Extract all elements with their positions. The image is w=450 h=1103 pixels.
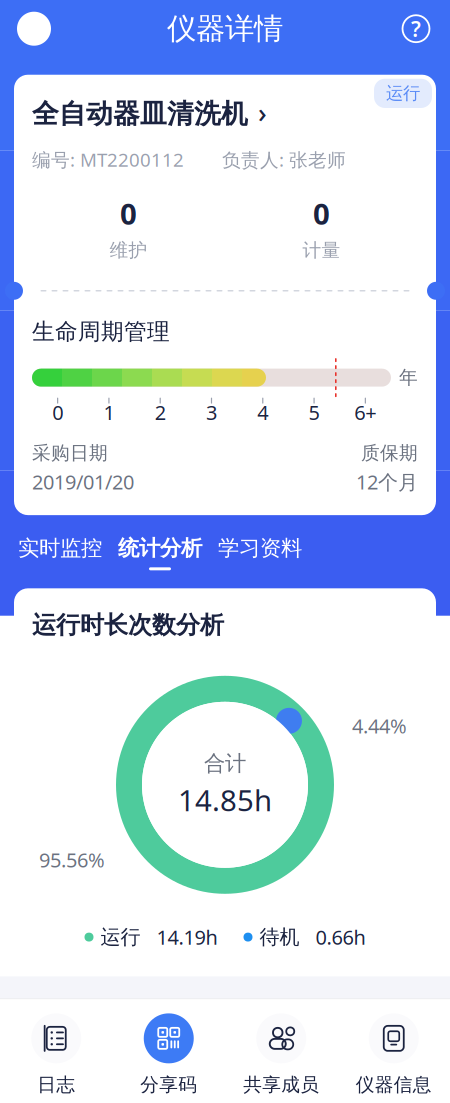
staticText: › [258,95,267,130]
staticText: 学习资料 [218,535,302,561]
staticText: 运行 [100,925,140,949]
staticText: 2 [155,399,166,426]
staticText: ? [411,14,421,43]
staticText: 年 [399,366,418,389]
button[interactable]: Back [12,7,56,51]
staticText: 实时监控 [18,535,102,561]
button[interactable]: 全自动器皿清洗机 [32,95,418,133]
staticText: 14.85h [178,780,272,819]
staticText: 计量 [302,239,340,262]
button[interactable]: 实时监控 [10,531,110,574]
button[interactable]: 学习资料 [210,531,310,574]
staticText: 共享成员 [243,1073,319,1096]
button[interactable]: 共享成员 [225,1013,337,1096]
staticText: 待机 [259,925,299,949]
staticText: 全自动器皿清洗机 [32,97,248,130]
staticText: 统计分析 [118,535,202,561]
staticText: 负责人: 张老师 [222,147,346,172]
button[interactable]: 日志 [0,1013,112,1096]
staticText: 运行时长次数分析 [32,610,224,640]
button[interactable]: 仪器信息 [337,1013,450,1096]
staticText: 5 [309,399,320,426]
staticText: 0 [52,399,63,426]
staticText: 0 [120,194,137,233]
staticText: 3 [206,399,217,426]
staticText: 95.56% [39,846,105,873]
button[interactable]: 分享码 [112,1013,225,1096]
staticText: 合计 [204,750,246,776]
staticText: 仪器详情 [167,11,283,47]
staticText: 维护 [109,239,147,262]
staticText: 生命周期管理 [32,318,170,346]
staticText: 12个月 [356,469,418,495]
staticText: 采购日期 [32,442,108,464]
staticText: 2019/01/20 [32,469,134,495]
staticText: 质保期 [361,442,418,464]
staticText: 4.44% [352,712,407,739]
staticText: 14.19h [156,924,217,950]
staticText: 0 [313,194,330,233]
staticText: 日志 [37,1073,75,1096]
staticText: 6+ [354,399,376,426]
button[interactable]: 统计分析 [110,531,210,574]
staticText: 1 [103,399,114,426]
staticText: ‹ [28,4,39,50]
staticText: 仪器信息 [356,1073,432,1096]
button[interactable]: Help [394,7,438,51]
staticText: 分享码 [140,1073,197,1096]
staticText: 0.66h [315,924,365,950]
staticText: 4 [257,399,268,426]
staticText: 运行 [386,83,420,104]
staticText: 编号: MT2200112 [32,147,184,172]
